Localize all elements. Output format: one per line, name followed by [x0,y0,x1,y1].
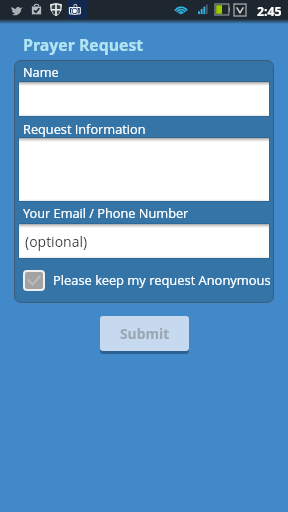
button[interactable]: Please keep my request Anonymous [18,264,270,296]
button[interactable] [19,82,269,116]
button[interactable]: Submit [100,316,189,351]
staticText: 2:45 [257,3,282,20]
button[interactable]: (optional) [19,224,269,258]
staticText: Your Email / Phone Number [23,204,189,221]
staticText: Name [23,63,59,80]
button[interactable] [19,138,269,201]
staticText: Prayer Request [23,34,144,56]
staticText: Please keep my request Anonymous [53,271,270,289]
staticText: (optional) [25,232,88,251]
staticText: Submit [120,324,170,343]
staticText: Request Information [23,120,146,137]
